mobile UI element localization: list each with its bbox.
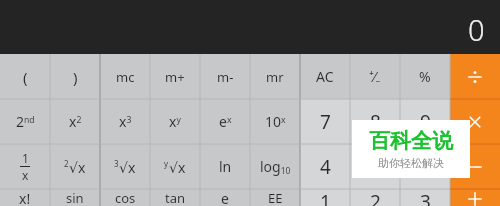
staticText: x2 — [69, 112, 82, 131]
button[interactable]: euler number — [200, 189, 250, 206]
staticText: x! — [19, 189, 31, 206]
staticText: 0 — [468, 10, 485, 49]
staticText: % — [419, 67, 431, 86]
button[interactable]: sine — [50, 189, 100, 206]
button[interactable]: two — [350, 189, 400, 206]
button[interactable]: cube root — [100, 144, 150, 189]
staticText: AC — [316, 67, 334, 86]
staticText: 1 — [22, 150, 29, 166]
staticText: 助你轻松解决 — [378, 156, 444, 170]
staticText: xy — [169, 112, 181, 131]
staticText: mc — [116, 68, 135, 86]
button[interactable]: close parenthesis — [50, 54, 100, 99]
staticText: m- — [217, 68, 234, 86]
staticText: e — [221, 189, 229, 206]
button[interactable]: percent — [400, 54, 450, 99]
staticText: y — [164, 158, 169, 169]
button[interactable]: natural logarithm — [200, 144, 250, 189]
staticText: 2 — [370, 189, 381, 206]
staticText: 4 — [320, 154, 331, 180]
button[interactable]: ten to the power x — [250, 99, 300, 144]
button[interactable]: log base ten — [250, 144, 300, 189]
button[interactable]: six — [400, 144, 450, 189]
button[interactable]: plus — [450, 189, 500, 206]
staticText: ( — [23, 67, 28, 87]
button[interactable]: four — [300, 144, 350, 189]
staticText: √x — [69, 158, 86, 177]
button[interactable]: open parenthesis — [0, 54, 50, 99]
staticText: sin — [66, 189, 84, 206]
button[interactable]: memory recall — [250, 54, 300, 99]
staticText: 7 — [320, 109, 331, 135]
staticText: cos — [115, 189, 136, 206]
button[interactable]: three — [400, 189, 450, 206]
button[interactable]: one — [300, 189, 350, 206]
staticText: ex — [219, 112, 232, 131]
staticText: 5 — [370, 154, 381, 180]
button[interactable]: x squared — [50, 99, 100, 144]
button[interactable]: all clear — [300, 54, 350, 99]
button[interactable]: nine — [400, 99, 450, 144]
staticText: √x — [119, 158, 136, 177]
staticText: m+ — [165, 68, 185, 86]
staticText: x — [22, 167, 29, 183]
button[interactable]: divide — [450, 54, 500, 99]
button[interactable]: seven — [300, 99, 350, 144]
button[interactable]: square root — [50, 144, 100, 189]
staticText: 9 — [420, 109, 431, 135]
staticText: 1 — [320, 189, 331, 206]
button[interactable]: x cubed — [100, 99, 150, 144]
staticText: 3 — [114, 158, 119, 169]
button[interactable]: exponent entry — [250, 189, 300, 206]
button[interactable]: tangent — [150, 189, 200, 206]
button[interactable]: multiply — [450, 99, 500, 144]
button[interactable]: factorial — [0, 189, 50, 206]
staticText: 2nd — [16, 112, 35, 131]
button[interactable]: cosine — [100, 189, 150, 206]
button[interactable]: memory minus — [200, 54, 250, 99]
staticText: mr — [266, 68, 284, 86]
staticText: x3 — [119, 112, 132, 131]
staticText: ) — [73, 67, 78, 87]
button[interactable]: eight — [350, 99, 400, 144]
staticText: 3 — [420, 189, 431, 206]
staticText: 6 — [420, 154, 431, 180]
staticText: log10 — [260, 157, 291, 177]
staticText: √x — [169, 158, 186, 177]
button[interactable]: minus — [450, 144, 500, 189]
button[interactable]: second functions — [0, 99, 50, 144]
button[interactable]: e to the power x — [200, 99, 250, 144]
button[interactable]: one divided by x — [0, 144, 50, 189]
staticText: ln — [219, 157, 232, 176]
staticText: 百科全说 — [369, 128, 453, 154]
button[interactable]: plus minus sign — [350, 54, 400, 99]
staticText: 10x — [265, 112, 286, 131]
staticText: 2 — [64, 158, 69, 169]
button[interactable]: y th root — [150, 144, 200, 189]
staticText: EE — [268, 189, 283, 206]
staticText: ⁺⁄₋ — [369, 67, 381, 86]
button[interactable]: memory clear — [100, 54, 150, 99]
button[interactable]: x to the power y — [150, 99, 200, 144]
button[interactable]: five — [350, 144, 400, 189]
staticText: tan — [165, 189, 186, 206]
staticText: 8 — [370, 109, 381, 135]
button[interactable]: memory plus — [150, 54, 200, 99]
